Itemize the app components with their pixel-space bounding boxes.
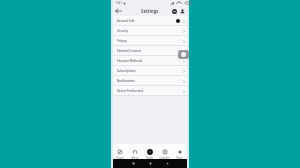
button[interactable]: Payment Methods: [113, 56, 187, 66]
staticText: Music: [131, 156, 139, 159]
staticText: Settings: [141, 8, 159, 14]
button[interactable]: Subscriptions: [113, 66, 187, 76]
staticText: Security: [117, 29, 129, 33]
staticText: Subscriptions: [117, 69, 136, 73]
staticText: Parental Controls: [117, 49, 141, 53]
button[interactable]: Device Preferences: [113, 86, 187, 96]
button[interactable]: More: [172, 144, 187, 159]
button[interactable]: Security: [113, 26, 187, 36]
button[interactable]: Profile: [180, 9, 185, 14]
staticText: Payment Methods: [117, 59, 143, 63]
button[interactable]: Recents: [132, 162, 135, 165]
button[interactable]: Notifications: [113, 76, 187, 86]
button[interactable]: Back: [166, 162, 169, 165]
staticText: Home: [116, 156, 124, 159]
button[interactable]: Account Info: [113, 16, 187, 26]
button[interactable]: Help: [172, 9, 177, 14]
button[interactable]: Parental Controls toggle: [178, 50, 189, 59]
button[interactable]: Music: [127, 144, 142, 159]
button[interactable]: Home: [149, 162, 152, 165]
button[interactable]: Home: [113, 144, 127, 159]
button[interactable]: Connect: [157, 144, 172, 159]
staticText: Notifications: [117, 79, 135, 83]
staticText: Account Info: [117, 19, 135, 23]
staticText: Device Preferences: [117, 89, 144, 93]
button[interactable]: Privacy: [113, 36, 187, 46]
button[interactable]: Radio: [142, 144, 157, 159]
staticText: More: [176, 156, 183, 159]
button[interactable]: Parental Controls: [113, 46, 187, 56]
staticText: Privacy: [117, 39, 127, 43]
button[interactable]: Back: [115, 8, 122, 15]
staticText: Connect: [159, 156, 170, 159]
staticText: 9:41: [116, 1, 122, 5]
staticText: Radio: [146, 156, 153, 159]
